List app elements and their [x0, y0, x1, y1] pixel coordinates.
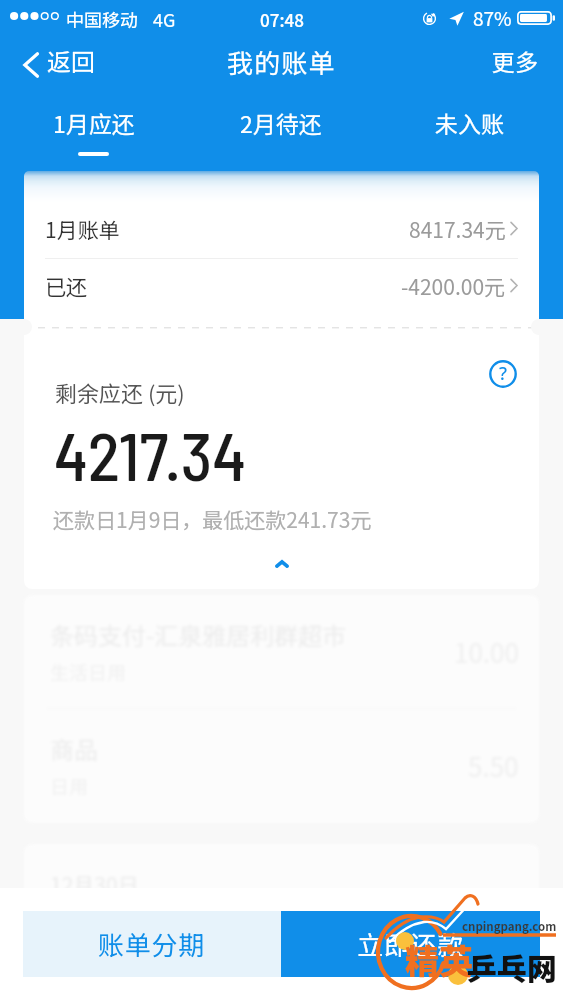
staticText: 商品	[50, 731, 98, 766]
staticText: 乒乓网	[467, 945, 557, 988]
staticText: 精英	[405, 935, 473, 984]
staticText: 我的账单	[227, 43, 336, 81]
staticText: 1月账单	[45, 214, 120, 244]
staticText: 还款日1月9日，最低还款241.73元	[53, 504, 372, 534]
button[interactable]: Collapse	[260, 542, 304, 586]
staticText: cnpingpang.com	[462, 918, 557, 935]
button[interactable]: 返回	[0, 37, 111, 92]
button[interactable]: 1月应还	[0, 96, 187, 156]
staticText: 剩余应还 (元)	[55, 376, 185, 408]
staticText: 2月待还	[240, 106, 322, 139]
button[interactable]: 2月待还	[187, 96, 375, 156]
staticText: 4G	[153, 6, 176, 32]
staticText: -4200.00元	[401, 271, 506, 301]
button[interactable]: Help	[475, 346, 531, 402]
button[interactable]: 未入账	[375, 96, 563, 156]
staticText: 未入账	[435, 106, 504, 139]
staticText: 4217.34	[54, 414, 247, 494]
button[interactable]: 1月账单	[24, 200, 539, 257]
staticText: 8417.34元	[409, 214, 506, 244]
button[interactable]: 已还	[24, 257, 539, 314]
staticText: 12月30日	[50, 869, 139, 899]
staticText: 87%	[473, 4, 512, 32]
staticText: 条码支付-汇泉雅居利群超市	[50, 617, 347, 652]
button[interactable]: 账单分期	[23, 911, 281, 977]
button[interactable]: 更多	[472, 34, 563, 87]
staticText: 07:48	[260, 7, 304, 32]
staticText: 返回	[47, 43, 95, 78]
staticText: 账单分期	[98, 925, 206, 963]
staticText: 1月应还	[53, 106, 135, 139]
button[interactable]: 立即还款	[281, 911, 540, 977]
staticText: 立即还款	[357, 925, 465, 963]
staticText: 中国移动	[66, 6, 138, 32]
staticText: 已还	[45, 271, 87, 301]
staticText: ?	[499, 361, 508, 386]
